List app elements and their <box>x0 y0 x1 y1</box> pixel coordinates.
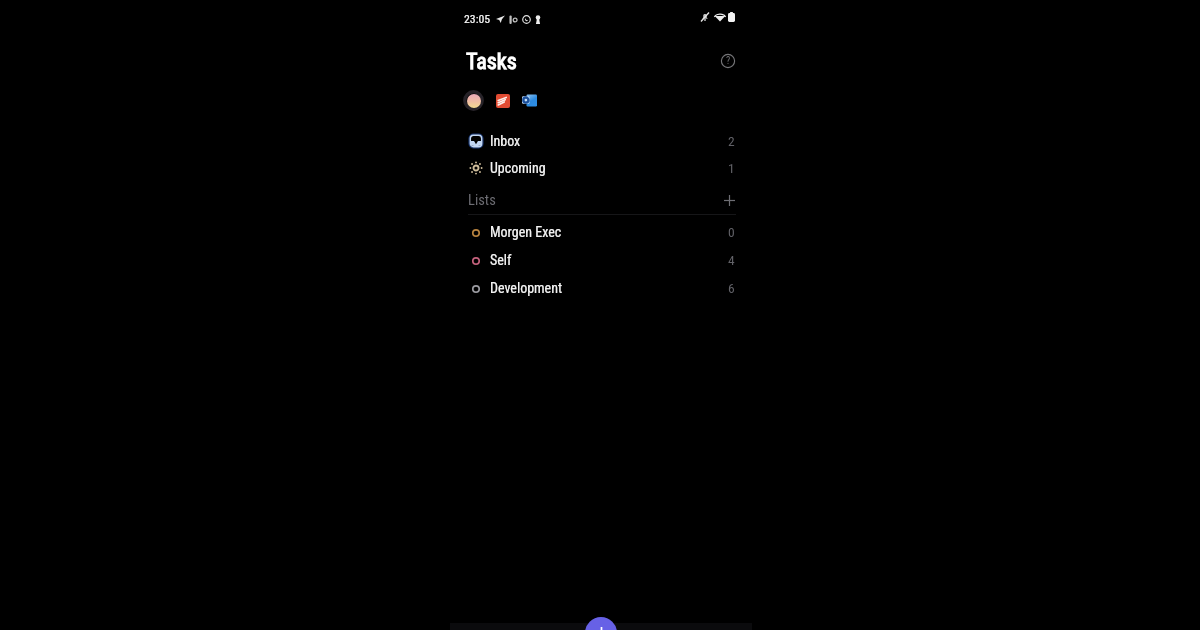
staticText: Lists <box>468 192 496 209</box>
button[interactable]: Add list <box>720 191 738 209</box>
staticText: 6 <box>728 280 735 296</box>
button[interactable]: Account <box>467 94 481 108</box>
staticText: 4 <box>728 252 735 268</box>
button[interactable]: Todoist account <box>496 94 510 108</box>
button[interactable]: Help <box>716 49 740 73</box>
staticText: 0 <box>728 224 735 240</box>
staticText: Development <box>490 280 563 296</box>
staticText: Upcoming <box>490 160 546 176</box>
button[interactable]: Upcoming <box>450 154 752 181</box>
button[interactable]: Self <box>450 246 752 274</box>
staticText: ? <box>726 55 731 67</box>
button[interactable]: Morgen Exec <box>450 218 752 246</box>
staticText: Inbox <box>490 133 521 149</box>
staticText: Morgen Exec <box>490 224 562 240</box>
button[interactable]: Development <box>450 274 752 302</box>
staticText: Tasks <box>466 49 517 75</box>
staticText: 1 <box>728 160 735 176</box>
button[interactable]: Inbox <box>450 127 752 154</box>
staticText: Self <box>490 252 512 268</box>
staticText: 23:05 <box>464 12 491 26</box>
staticText: 2 <box>728 133 735 149</box>
button[interactable]: Add task <box>585 617 617 630</box>
button[interactable]: Outlook account <box>522 93 537 108</box>
